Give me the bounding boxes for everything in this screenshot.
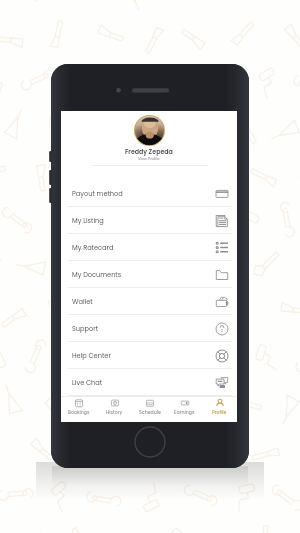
staticText: Help Center: [72, 351, 111, 360]
staticText: Wallet: [72, 297, 93, 306]
button[interactable]: Earnings: [167, 397, 202, 422]
staticText: Support: [72, 324, 99, 333]
button[interactable]: Support: [61, 315, 237, 342]
staticText: My Documents: [72, 270, 122, 279]
button[interactable]: Wallet: [61, 288, 237, 315]
button[interactable]: View Profile: [138, 156, 160, 161]
button[interactable]: My Listing: [61, 207, 237, 234]
staticText: Profile: [212, 409, 227, 416]
button[interactable]: Profile: [202, 397, 237, 422]
button[interactable]: Payout method: [61, 180, 237, 207]
button[interactable]: Live Chat: [61, 369, 237, 396]
staticText: History: [106, 409, 123, 416]
button[interactable]: Schedule: [132, 397, 167, 422]
button[interactable]: Help Center: [61, 342, 237, 369]
button[interactable]: My Documents: [61, 261, 237, 288]
staticText: Live Chat: [72, 378, 103, 387]
button[interactable]: Freddy Zepeda: [125, 147, 173, 156]
staticText: Earnings: [174, 409, 195, 416]
staticText: Bookings: [68, 409, 90, 416]
button[interactable]: History: [97, 397, 132, 422]
staticText: My Ratecard: [72, 243, 114, 252]
staticText: Schedule: [139, 409, 161, 416]
button[interactable]: [134, 115, 165, 146]
staticText: View Profile: [138, 156, 160, 161]
staticText: Payout method: [72, 189, 123, 198]
staticText: My Listing: [72, 216, 104, 225]
button[interactable]: My Ratecard: [61, 234, 237, 261]
staticText: Freddy Zepeda: [125, 147, 173, 156]
button[interactable]: Bookings: [61, 397, 97, 422]
